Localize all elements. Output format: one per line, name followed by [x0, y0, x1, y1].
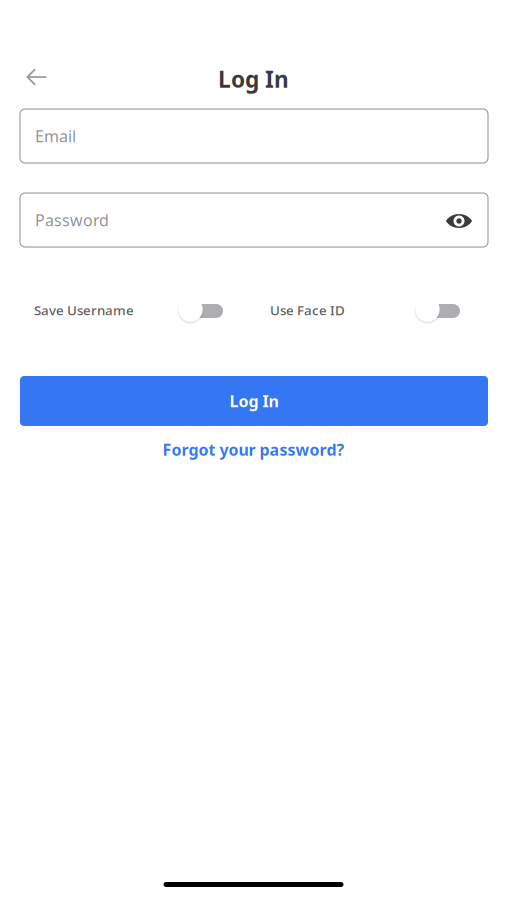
staticText: Email — [35, 125, 76, 147]
button[interactable]: Email — [20, 109, 488, 163]
staticText: Use Face ID — [270, 301, 345, 319]
staticText: Log In — [218, 64, 289, 94]
button[interactable]: Show password — [442, 203, 476, 237]
staticText: Password — [35, 209, 109, 231]
staticText: Save Username — [34, 301, 134, 319]
button[interactable]: Forgot your password? — [162, 433, 344, 466]
button[interactable]: Use Face ID — [270, 298, 460, 322]
button[interactable]: Log In — [20, 376, 488, 426]
button[interactable]: Save Username — [34, 298, 223, 322]
staticText: Log In — [229, 390, 278, 412]
staticText: Forgot your password? — [162, 439, 344, 460]
button[interactable]: Password — [20, 193, 488, 247]
button[interactable]: Back — [17, 58, 57, 98]
